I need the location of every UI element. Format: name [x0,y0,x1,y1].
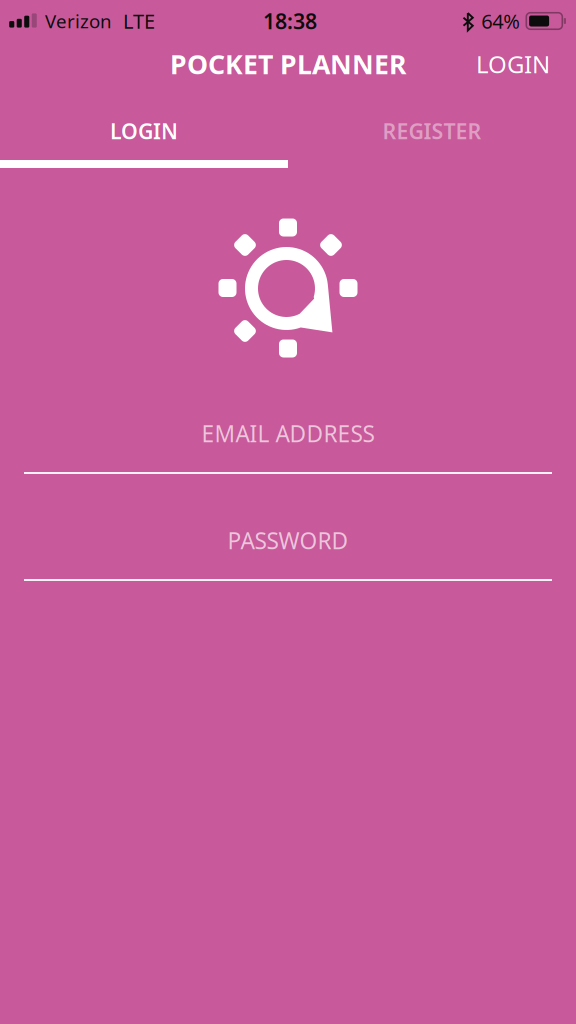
staticText: LTE [123,8,155,34]
staticText: LOGIN [110,117,178,145]
staticText: POCKET PLANNER [170,46,406,82]
staticText: 64% [481,8,520,34]
staticText: 18:38 [263,7,317,35]
staticText: Verizon [45,9,112,33]
button[interactable]: REGISTER [288,94,576,168]
button[interactable]: EMAIL ADDRESS [0,418,576,474]
staticText: REGISTER [382,117,481,145]
staticText: EMAIL ADDRESS [201,418,374,448]
button[interactable]: LOGIN [0,94,288,168]
staticText: PASSWORD [227,525,348,555]
button[interactable]: PASSWORD [0,525,576,581]
staticText: LOGIN [476,48,550,80]
button[interactable]: LOGIN [456,46,576,90]
